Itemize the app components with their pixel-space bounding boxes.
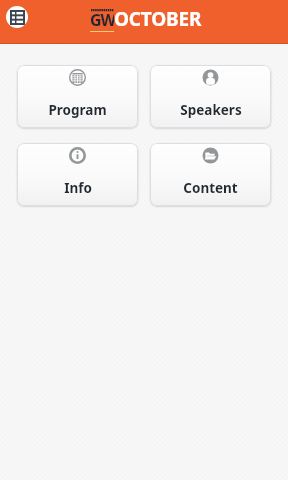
button[interactable]: Menu (0, 0, 33, 33)
button[interactable]: Info (17, 143, 138, 206)
staticText: Program (48, 101, 107, 119)
button[interactable]: Program (17, 65, 138, 128)
button[interactable]: Content (150, 143, 271, 206)
button[interactable]: Speakers (150, 65, 271, 128)
staticText: Content (183, 179, 238, 197)
staticText: Info (64, 179, 92, 197)
staticText: GW (90, 9, 114, 31)
staticText: OCTOBER (114, 6, 202, 32)
staticText: Speakers (180, 101, 242, 119)
